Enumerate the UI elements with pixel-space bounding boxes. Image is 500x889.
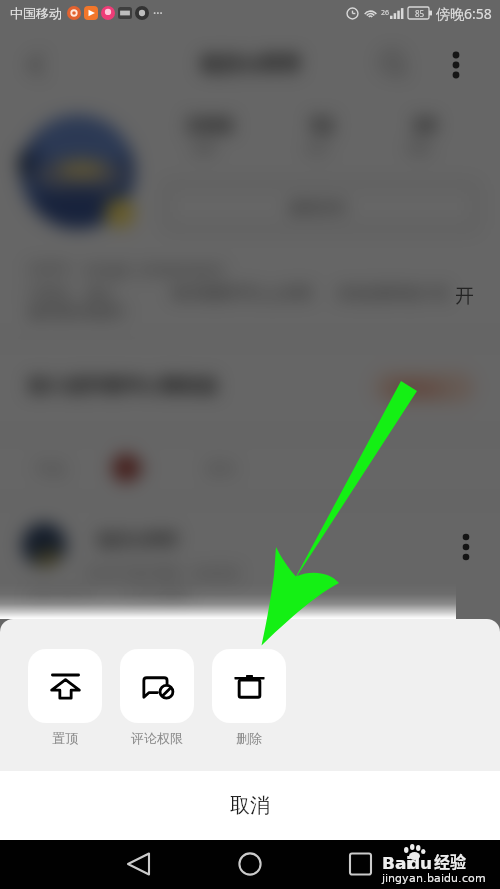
button[interactable]: 置顶	[28, 649, 102, 723]
staticText: 26	[381, 8, 390, 18]
other: 置顶	[46, 667, 85, 706]
button[interactable]: 评论权限	[120, 649, 194, 723]
staticText: 85	[415, 8, 425, 19]
staticText: 傍晚6:58	[436, 4, 492, 23]
staticText: ···	[153, 5, 163, 21]
other: 评论权限	[138, 667, 177, 706]
staticText: 删除	[236, 730, 262, 746]
staticText: 置顶	[52, 730, 78, 746]
staticText: 评论权限	[131, 730, 183, 746]
button[interactable]: 删除	[212, 649, 286, 723]
other: 删除	[230, 667, 269, 706]
button[interactable]: 取消	[0, 771, 500, 840]
staticText: 中国移动	[10, 5, 62, 21]
staticText: 取消	[230, 793, 270, 818]
